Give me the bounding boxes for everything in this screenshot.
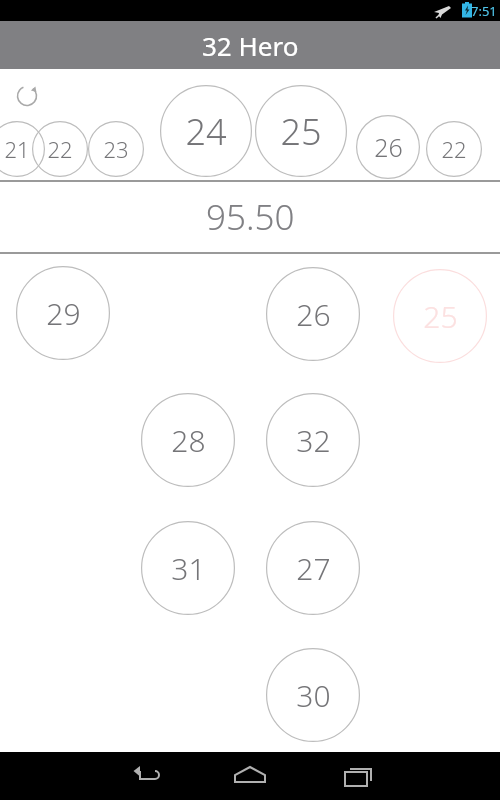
button[interactable]: 31: [141, 521, 235, 615]
staticText: 32 Hero: [202, 28, 299, 63]
button[interactable]: Back: [122, 752, 178, 800]
button[interactable]: Recent apps: [330, 752, 386, 800]
staticText: 25: [423, 296, 458, 337]
button[interactable]: 95.50: [0, 182, 500, 252]
staticText: 30: [296, 675, 331, 716]
button[interactable]: 22: [426, 121, 482, 177]
button[interactable]: 28: [141, 393, 235, 487]
staticText: 29: [46, 293, 81, 334]
staticText: 7:51: [471, 2, 497, 20]
button[interactable]: 30: [266, 648, 360, 742]
staticText: 22: [441, 134, 467, 164]
staticText: 25: [280, 107, 322, 156]
button[interactable]: 26: [266, 267, 360, 361]
staticText: 26: [374, 130, 403, 164]
button[interactable]: 26: [356, 115, 420, 179]
staticText: 95.50: [206, 193, 295, 241]
staticText: 31: [171, 548, 206, 589]
button[interactable]: 27: [266, 521, 360, 615]
staticText: 23: [103, 134, 129, 164]
button[interactable]: 32: [266, 393, 360, 487]
staticText: 32: [296, 420, 331, 461]
staticText: 22: [47, 134, 73, 164]
staticText: 27: [296, 548, 331, 589]
staticText: 26: [296, 294, 331, 335]
button[interactable]: Refresh: [13, 82, 41, 110]
button[interactable]: 23: [88, 121, 144, 177]
button[interactable]: 25: [393, 269, 487, 363]
button[interactable]: 24: [160, 85, 252, 177]
button[interactable]: 29: [16, 266, 110, 360]
button[interactable]: 25: [255, 85, 347, 177]
staticText: 21: [4, 134, 30, 164]
button[interactable]: Home: [222, 752, 278, 800]
staticText: 24: [185, 107, 227, 156]
button[interactable]: 22: [32, 121, 88, 177]
button[interactable]: 21: [0, 121, 45, 177]
staticText: 28: [171, 420, 206, 461]
